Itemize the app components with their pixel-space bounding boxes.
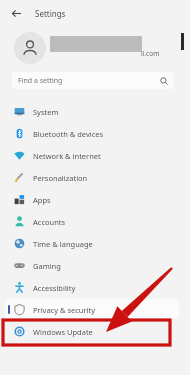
staticText: Privacy & security (33, 305, 96, 315)
staticText: Time & language (33, 239, 93, 249)
button[interactable]: Privacy & security (0, 298, 190, 320)
staticText: System (33, 107, 59, 117)
staticText: Bluetooth & devices (33, 129, 104, 139)
staticText: Accessibility (33, 283, 76, 293)
button[interactable]: Gaming (0, 254, 190, 276)
button[interactable]: Back (0, 0, 190, 26)
button[interactable]: Windows Update (0, 320, 190, 342)
staticText: Find a setting (18, 76, 63, 86)
button[interactable]: Apps (0, 188, 190, 210)
staticText: il.com (141, 49, 160, 58)
button[interactable]: Accessibility (0, 276, 190, 298)
staticText: Settings (35, 8, 66, 19)
staticText: Personalization (33, 173, 88, 183)
button[interactable]: Time & language (0, 232, 190, 254)
button[interactable]: System (0, 100, 190, 122)
button[interactable]: il.com (0, 26, 190, 72)
button[interactable]: Accounts (0, 210, 190, 232)
staticText: Network & internet (33, 151, 101, 161)
button[interactable]: Network & internet (0, 144, 190, 166)
staticText: Gaming (33, 261, 61, 271)
button[interactable]: Find a setting (12, 72, 174, 89)
button[interactable]: Bluetooth & devices (0, 122, 190, 144)
other: Back (9, 6, 23, 20)
button[interactable]: Personalization (0, 166, 190, 188)
staticText: Accounts (33, 217, 66, 227)
staticText: Windows Update (33, 327, 93, 337)
staticText: Apps (33, 195, 51, 205)
